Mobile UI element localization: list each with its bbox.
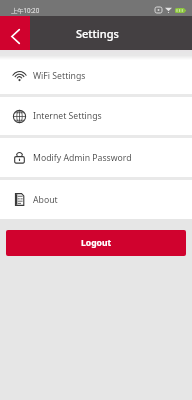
button[interactable]: Back: [0, 16, 30, 50]
staticText: Internet Settings: [33, 110, 102, 122]
staticText: Logout: [81, 237, 112, 249]
staticText: About: [33, 194, 58, 206]
button[interactable]: WiFi Settings: [0, 57, 192, 94]
button[interactable]: Logout: [6, 230, 186, 256]
button[interactable]: About: [0, 180, 192, 219]
staticText: WiFi Settings: [33, 70, 86, 82]
button[interactable]: Internet Settings: [0, 97, 192, 135]
staticText: Settings: [76, 26, 119, 41]
staticText: 上午10:20: [11, 6, 40, 14]
staticText: Modify Admin Password: [33, 152, 132, 164]
button[interactable]: Modify Admin Password: [0, 138, 192, 177]
